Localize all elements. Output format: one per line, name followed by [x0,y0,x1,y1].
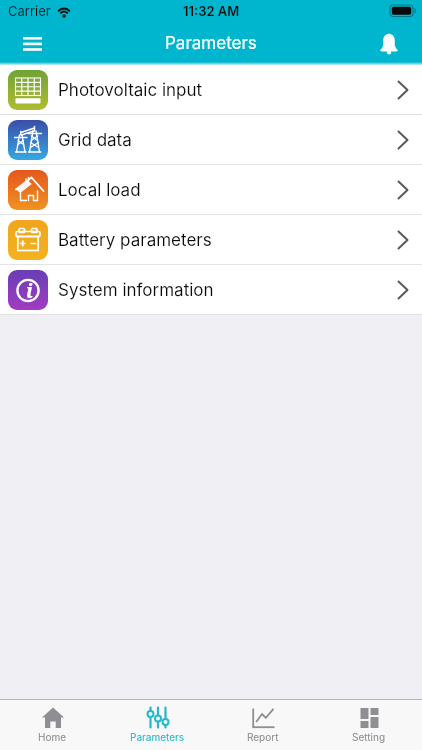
staticText: Photovoltaic input [58,80,203,101]
staticText: System information [58,280,214,301]
staticText: Home [38,731,67,743]
staticText: Setting [352,731,386,743]
staticText: i [26,278,33,304]
staticText: Grid data [58,130,132,151]
staticText: Battery parameters [58,230,212,251]
staticText: Local load [58,180,141,201]
staticText: Parameters [165,33,257,54]
staticText: Carrier [8,3,51,19]
staticText: Parameters [130,731,185,743]
staticText: Report [247,731,279,743]
staticText: 11:32 AM [183,3,240,19]
